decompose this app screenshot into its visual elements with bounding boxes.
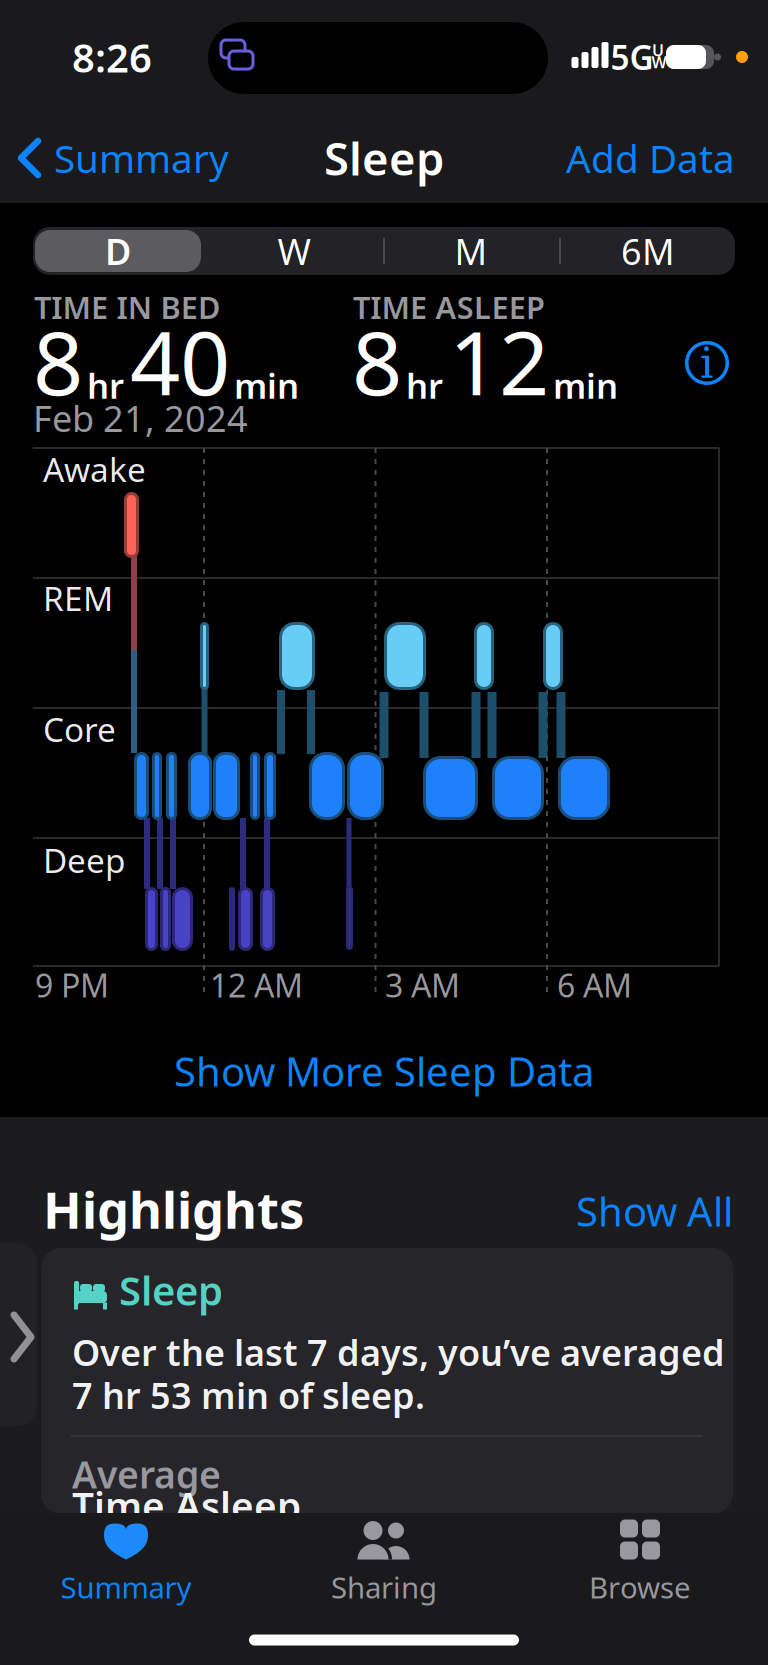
staticText: Summary <box>60 1567 191 1606</box>
staticText: 12 <box>449 303 549 419</box>
staticText: 8 <box>352 303 402 419</box>
staticText: 12 AM <box>210 964 303 1006</box>
staticText: Show All <box>576 1184 733 1237</box>
staticText: W <box>651 51 666 73</box>
button[interactable]: Show All <box>576 1184 733 1237</box>
button[interactable]: Sharing <box>294 1518 474 1608</box>
staticText: min <box>234 362 299 408</box>
button[interactable]: M <box>396 229 546 273</box>
staticText: Time Asleep <box>72 1479 301 1531</box>
staticText: Core <box>43 707 116 751</box>
staticText: Sharing <box>331 1567 437 1606</box>
staticText: 40 <box>130 303 230 419</box>
button[interactable]: D <box>35 227 201 275</box>
staticText: M <box>454 227 487 275</box>
staticText: 3 AM <box>385 964 460 1006</box>
staticText: Browse <box>589 1567 691 1606</box>
staticText: Sleep <box>324 128 444 188</box>
staticText: 5G <box>610 35 653 79</box>
button[interactable]: Summary <box>36 1518 216 1608</box>
staticText: W <box>277 227 310 275</box>
staticText: Sleep <box>119 1263 223 1316</box>
button[interactable]: Add Data <box>566 132 735 184</box>
button[interactable] <box>0 1243 37 1426</box>
staticText: hr <box>406 362 443 408</box>
staticText: 6 AM <box>557 964 632 1006</box>
staticText: 6M <box>621 227 675 275</box>
button[interactable]: Sleep <box>41 1248 733 1514</box>
staticText: Awake <box>43 447 146 491</box>
staticText: Feb 21, 2024 <box>33 394 248 442</box>
staticText: hr <box>87 362 124 408</box>
staticText: i <box>700 338 714 388</box>
staticText: 7 hr 53 min of sleep. <box>72 1371 425 1419</box>
staticText: Highlights <box>43 1175 304 1243</box>
staticText: 8 <box>33 303 83 419</box>
staticText: Show More Sleep Data <box>174 1044 594 1097</box>
staticText: U <box>652 39 664 61</box>
button[interactable]: Show More Sleep Data <box>174 1044 594 1097</box>
button[interactable]: i <box>685 338 729 388</box>
staticText: D <box>105 227 131 275</box>
staticText: Over the last 7 days, you’ve averaged <box>72 1328 725 1376</box>
button[interactable]: Summary <box>18 132 229 184</box>
button[interactable]: W <box>219 229 369 273</box>
button[interactable]: Browse <box>550 1518 730 1608</box>
staticText: REM <box>43 576 113 620</box>
staticText: TIME ASLEEP <box>353 287 545 327</box>
staticText: 9 PM <box>35 964 109 1006</box>
staticText: Add Data <box>566 132 735 184</box>
staticText: 8:26 <box>72 30 152 83</box>
staticText: min <box>553 362 618 408</box>
button[interactable]: 6M <box>573 229 723 273</box>
staticText: Deep <box>43 838 126 882</box>
staticText: Average <box>72 1449 221 1499</box>
staticText: TIME IN BED <box>34 287 220 327</box>
staticText: Summary <box>54 132 229 184</box>
